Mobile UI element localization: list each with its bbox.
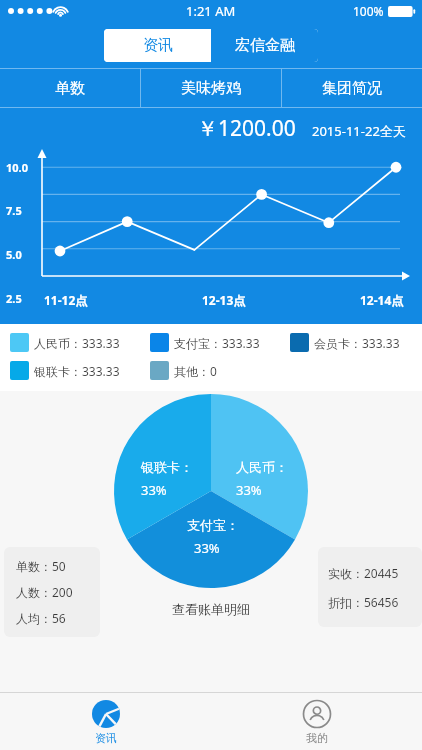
button[interactable]: 我的 [211, 693, 422, 750]
staticText: 单数 [55, 79, 85, 98]
button[interactable]: 资讯 [104, 29, 211, 62]
staticText: 人民币： [236, 459, 288, 475]
button[interactable]: 单数 [0, 69, 140, 107]
staticText: 人民币：333.33 [34, 335, 120, 351]
staticText: 2015-11-22全天 [312, 122, 406, 140]
staticText: 支付宝： [187, 517, 239, 533]
other: 我的 [302, 699, 332, 729]
staticText: 美味烤鸡 [181, 79, 241, 98]
staticText: 会员卡：333.33 [314, 335, 400, 351]
staticText: ￥1200.00 [197, 114, 296, 143]
staticText: 我的 [306, 731, 328, 745]
staticText: 100% [353, 3, 384, 19]
button[interactable]: 集团简况 [282, 69, 422, 107]
staticText: 0 [26, 331, 33, 346]
staticText: 资讯 [95, 731, 117, 745]
staticText: 12-14点 [360, 292, 404, 308]
button[interactable]: 查看账单明细 [168, 597, 254, 621]
staticText: 银联卡：333.33 [34, 363, 120, 379]
staticText: 10.0 [6, 160, 28, 175]
staticText: 其他：0 [174, 363, 217, 379]
staticText: 集团简况 [322, 79, 382, 98]
staticText: 5.0 [6, 247, 22, 262]
staticText: 33% [141, 481, 167, 499]
staticText: 1:21 AM [186, 2, 236, 20]
staticText: 查看账单明细 [172, 601, 250, 617]
button[interactable]: 宏信金融 [211, 29, 318, 62]
staticText: 7.5 [6, 203, 22, 218]
staticText: 资讯 [143, 36, 173, 55]
staticText: 实收：20445 [328, 565, 399, 581]
staticText: 12-13点 [202, 292, 246, 308]
staticText: 人数：200 [16, 584, 73, 600]
staticText: 支付宝：333.33 [174, 335, 260, 351]
staticText: 33% [236, 481, 262, 499]
staticText: 人均：56 [16, 610, 66, 626]
staticText: 2.5 [6, 291, 22, 306]
staticText: 折扣：56456 [328, 594, 399, 610]
staticText: 单数：50 [16, 558, 66, 574]
button[interactable]: 美味烤鸡 [141, 69, 281, 107]
staticText: 33% [194, 539, 220, 557]
button[interactable]: 资讯 [0, 693, 211, 750]
staticText: 银联卡： [141, 459, 193, 475]
staticText: 宏信金融 [235, 36, 295, 55]
staticText: 11-12点 [44, 292, 88, 308]
